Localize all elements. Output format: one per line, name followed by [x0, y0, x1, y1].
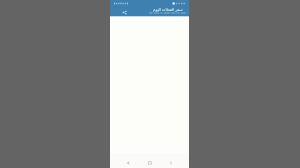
- button[interactable]: Back: [123, 158, 133, 168]
- button[interactable]: Share: [120, 8, 129, 17]
- button[interactable]: Home: [145, 158, 155, 168]
- staticText: سعر العملات اليوم: [153, 7, 183, 12]
- button[interactable]: Recent apps: [166, 158, 176, 168]
